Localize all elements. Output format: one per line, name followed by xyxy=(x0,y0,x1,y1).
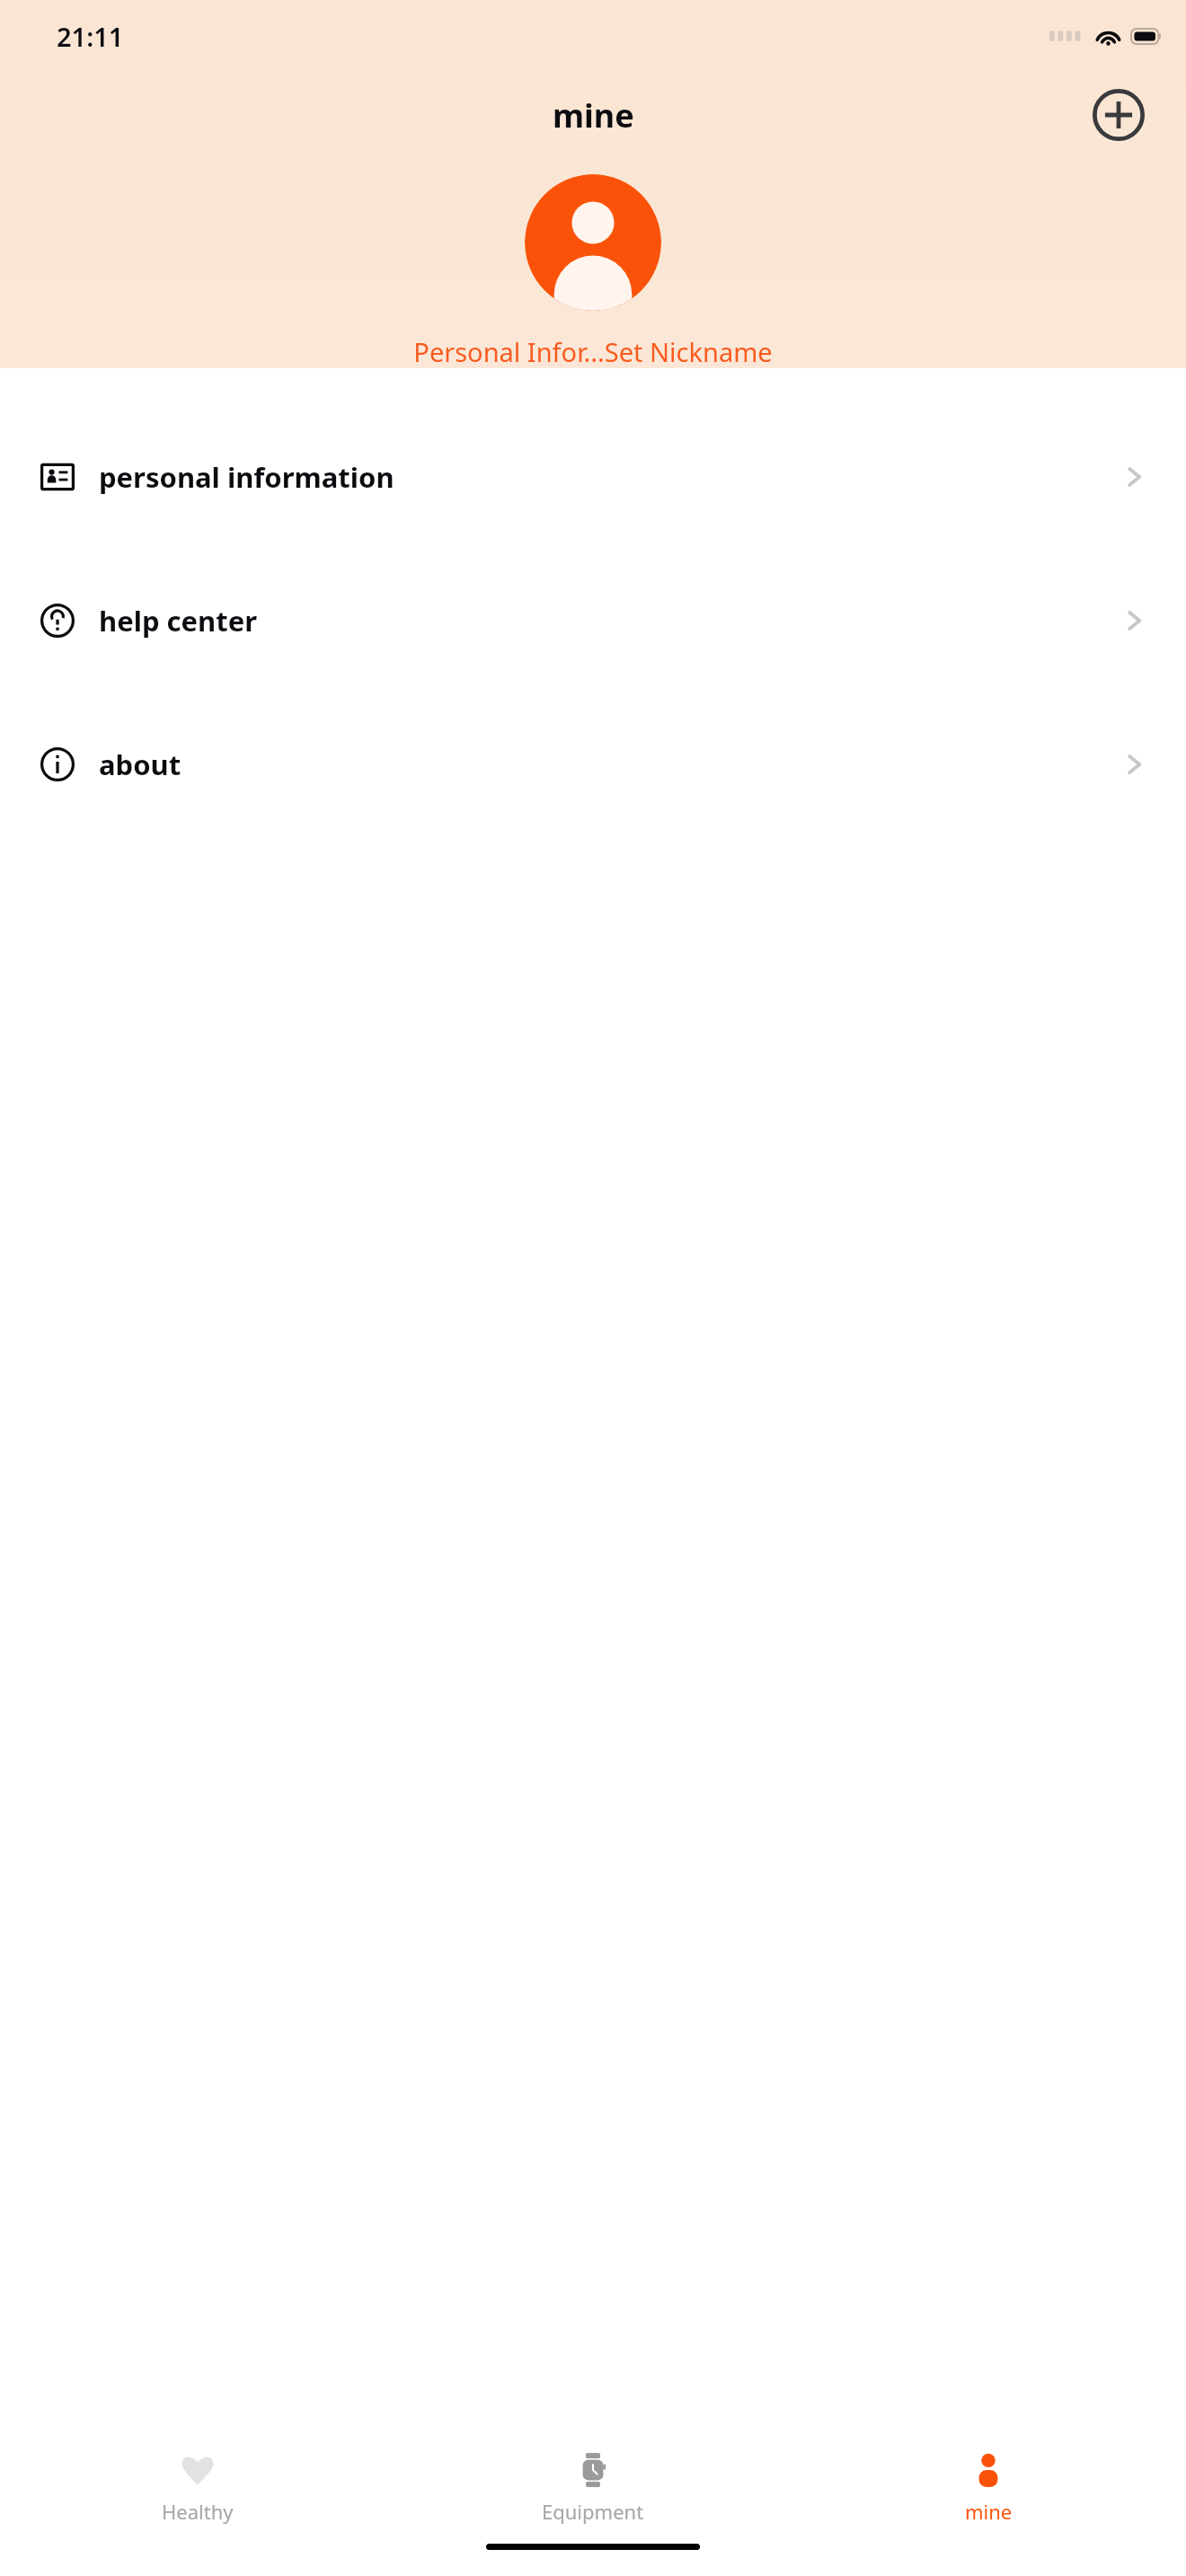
button[interactable]: Healthy xyxy=(0,2434,395,2542)
staticText: 21:11 xyxy=(57,19,124,54)
button[interactable]: Profile avatar xyxy=(525,174,661,311)
staticText: Equipment xyxy=(542,2498,644,2525)
staticText: mine xyxy=(965,2498,1013,2525)
button[interactable]: about xyxy=(0,732,1186,797)
staticText: mine xyxy=(553,93,634,137)
staticText: help center xyxy=(99,602,258,640)
staticText: about xyxy=(99,745,181,783)
button[interactable]: Add xyxy=(1091,87,1146,143)
button[interactable]: help center xyxy=(0,588,1186,653)
staticText: Personal Infor...Set Nickname xyxy=(413,334,773,369)
button[interactable]: Personal Infor...Set Nickname xyxy=(406,331,780,373)
staticText: Healthy xyxy=(162,2498,234,2525)
button[interactable]: Equipment xyxy=(395,2434,791,2542)
staticText: personal information xyxy=(99,458,394,496)
button[interactable]: personal information xyxy=(0,445,1186,509)
button[interactable]: mine xyxy=(791,2434,1186,2542)
